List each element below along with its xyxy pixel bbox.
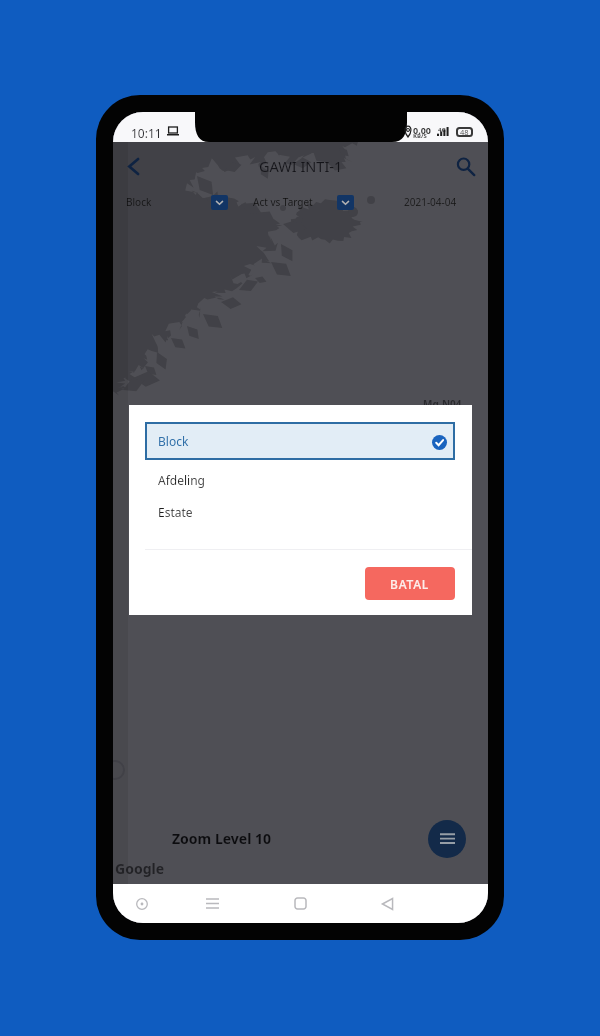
staticText: 0.00 bbox=[413, 124, 431, 136]
button[interactable]: Block bbox=[145, 422, 455, 460]
button[interactable]: Estate bbox=[145, 497, 455, 527]
button[interactable]: Menu bbox=[428, 820, 466, 858]
staticText: Mg-N04 bbox=[423, 397, 462, 411]
staticText: KB/S bbox=[413, 132, 427, 140]
button[interactable]: Block bbox=[126, 191, 228, 213]
button[interactable]: Home bbox=[280, 884, 320, 923]
staticText: Google bbox=[115, 859, 165, 878]
staticText: 4G bbox=[438, 126, 446, 134]
button[interactable]: Back bbox=[367, 884, 407, 923]
button[interactable]: Recents bbox=[192, 884, 232, 923]
staticText: Block bbox=[126, 195, 152, 209]
button[interactable]: BATAL bbox=[365, 567, 455, 600]
button[interactable]: Assistant bbox=[122, 884, 162, 923]
staticText: BATAL bbox=[390, 576, 430, 592]
staticText: 10:11 bbox=[131, 125, 162, 141]
button[interactable]: Afdeling bbox=[145, 465, 455, 495]
button[interactable]: Search bbox=[450, 151, 480, 181]
staticText: Act vs Target bbox=[253, 195, 313, 209]
button[interactable]: Act vs Target bbox=[253, 191, 354, 213]
staticText: Estate bbox=[158, 504, 193, 520]
staticText: Block bbox=[158, 433, 189, 449]
staticText: Zoom Level 10 bbox=[172, 829, 271, 848]
staticText: 2021-04-04 bbox=[404, 195, 457, 209]
staticText: Afdeling bbox=[158, 472, 205, 488]
staticText: 48 bbox=[460, 127, 469, 137]
staticText: GAWI INTI-1 bbox=[259, 156, 343, 176]
button[interactable]: Back bbox=[118, 151, 148, 181]
